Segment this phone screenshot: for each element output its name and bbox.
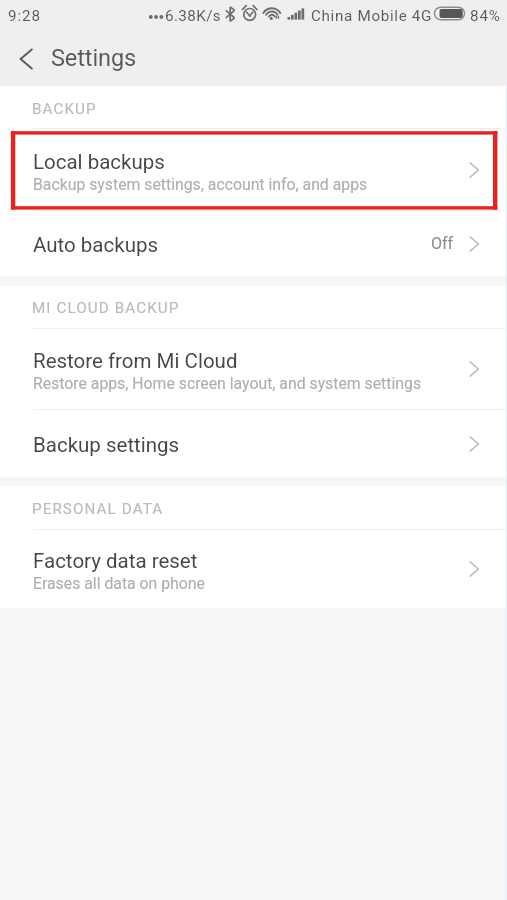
staticText: Auto backups <box>33 233 159 257</box>
staticText: Backup settings <box>33 433 180 457</box>
button[interactable]: Restore from Mi Cloud <box>0 329 507 409</box>
staticText: Restore from Mi Cloud <box>33 349 238 373</box>
staticText: China Mobile 4G <box>311 7 433 25</box>
staticText: MI CLOUD BACKUP <box>32 299 180 317</box>
staticText: Erases all data on phone <box>33 574 205 593</box>
staticText: Settings <box>51 44 137 72</box>
staticText: 9:28 <box>8 7 41 25</box>
staticText: PERSONAL DATA <box>32 500 164 518</box>
button[interactable]: Back <box>0 32 52 85</box>
staticText: Factory data reset <box>33 549 198 573</box>
staticText: Restore apps, Home screen layout, and sy… <box>33 374 422 393</box>
staticText: Local backups <box>33 150 165 174</box>
staticText: 84% <box>470 7 501 25</box>
staticText: 6.38K/s <box>165 7 222 25</box>
button[interactable]: Backup settings <box>0 410 507 477</box>
staticText: BACKUP <box>32 100 97 118</box>
button[interactable]: Factory data reset <box>0 530 507 608</box>
button[interactable]: Auto backups <box>0 211 507 276</box>
staticText: Off <box>431 234 454 253</box>
button[interactable]: Local backups <box>0 129 507 210</box>
staticText: Backup system settings, account info, an… <box>33 175 368 194</box>
